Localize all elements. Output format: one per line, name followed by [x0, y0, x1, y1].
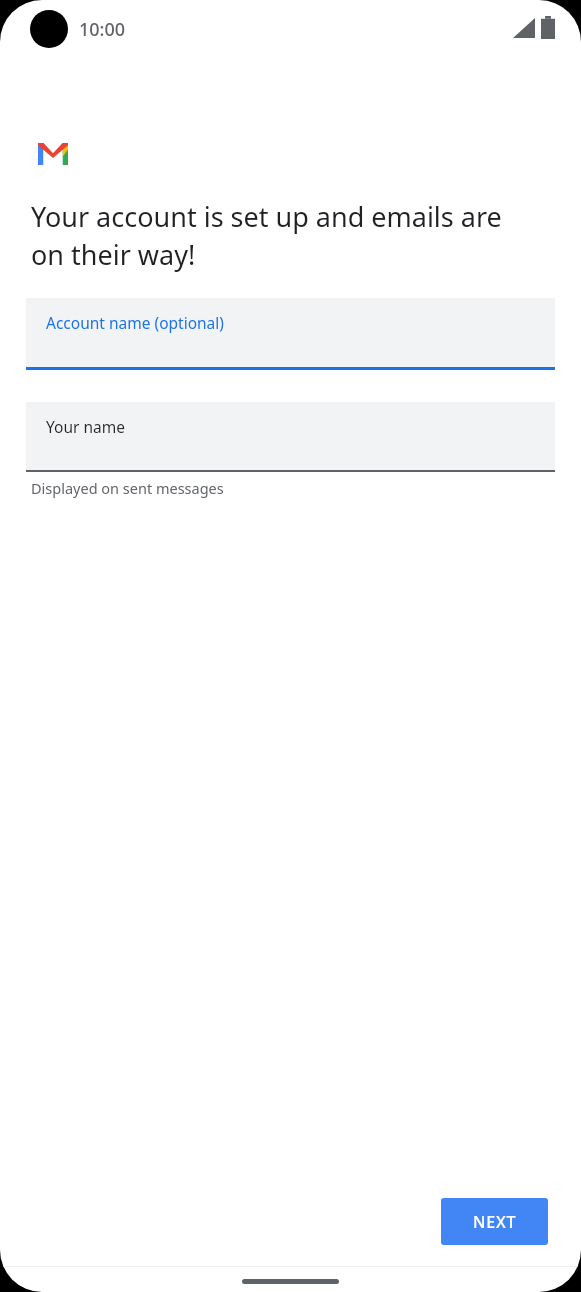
staticText: NEXT: [473, 1211, 517, 1233]
staticText: Your name: [46, 416, 125, 437]
button[interactable]: NEXT: [441, 1198, 548, 1245]
staticText: Your account is set up and emails are on…: [31, 198, 531, 273]
button[interactable]: Account name (optional): [26, 298, 555, 370]
staticText: Displayed on sent messages: [31, 478, 224, 498]
staticText: Account name (optional): [46, 312, 224, 333]
staticText: 10:00: [79, 17, 126, 42]
button[interactable]: Your name: [26, 402, 555, 472]
